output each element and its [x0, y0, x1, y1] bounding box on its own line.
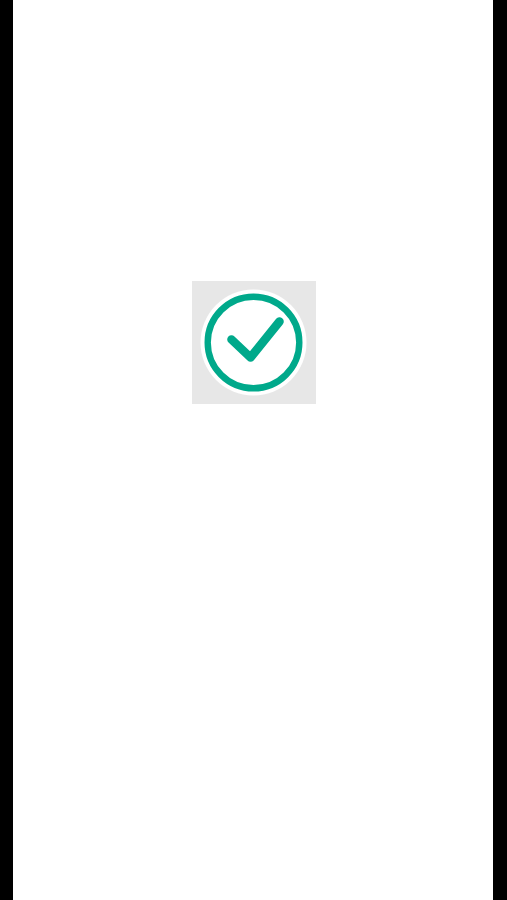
button[interactable]: Success: [0, 0, 507, 900]
